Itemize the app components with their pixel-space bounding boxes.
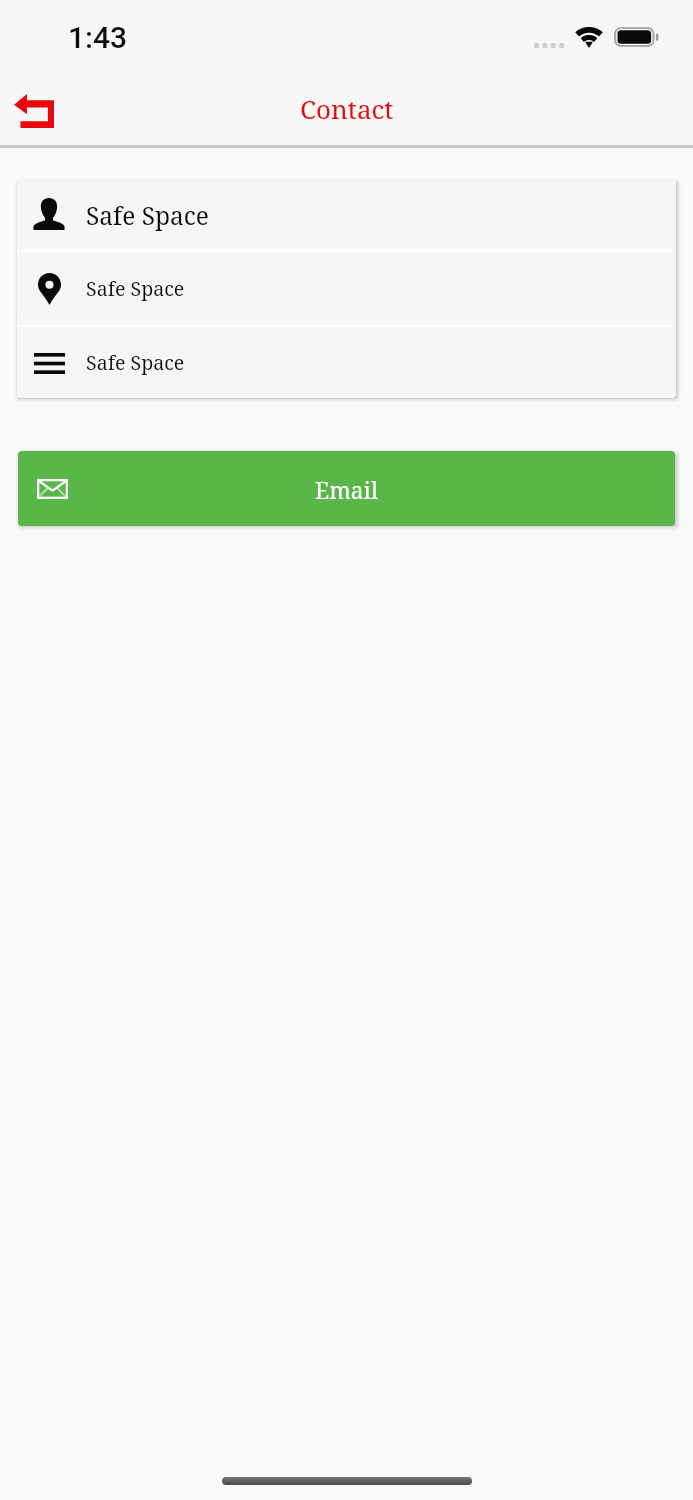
staticText: Email bbox=[315, 475, 378, 506]
button[interactable]: Safe Space bbox=[17, 252, 676, 325]
staticText: Safe Space bbox=[86, 199, 209, 232]
staticText: 1:43 bbox=[68, 20, 128, 55]
button[interactable]: Safe Space bbox=[17, 327, 676, 398]
staticText: Safe Space bbox=[86, 349, 185, 376]
staticText: Contact bbox=[300, 91, 394, 126]
button[interactable]: Email bbox=[18, 451, 675, 526]
staticText: Safe Space bbox=[86, 275, 185, 302]
button[interactable]: Safe Space bbox=[17, 180, 676, 250]
button[interactable]: Back bbox=[2, 79, 66, 143]
